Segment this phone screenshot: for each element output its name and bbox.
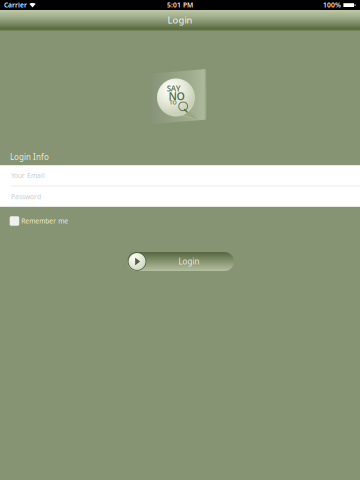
button[interactable]: Login bbox=[127, 252, 234, 271]
staticText: Your Email bbox=[11, 171, 45, 180]
staticText: SAY bbox=[167, 83, 181, 94]
staticText: Login Info bbox=[10, 152, 49, 162]
staticText: 5:01 PM bbox=[167, 1, 193, 9]
staticText: 100% bbox=[323, 1, 341, 9]
staticText: Carrier bbox=[4, 1, 27, 9]
staticText: Login bbox=[178, 256, 199, 267]
staticText: Login bbox=[167, 14, 192, 26]
staticText: Password bbox=[11, 192, 41, 201]
button[interactable]: Remember me bbox=[0, 215, 360, 227]
staticText: Remember me bbox=[21, 217, 68, 225]
staticText: NO bbox=[169, 89, 185, 103]
staticText: TO bbox=[169, 99, 176, 106]
